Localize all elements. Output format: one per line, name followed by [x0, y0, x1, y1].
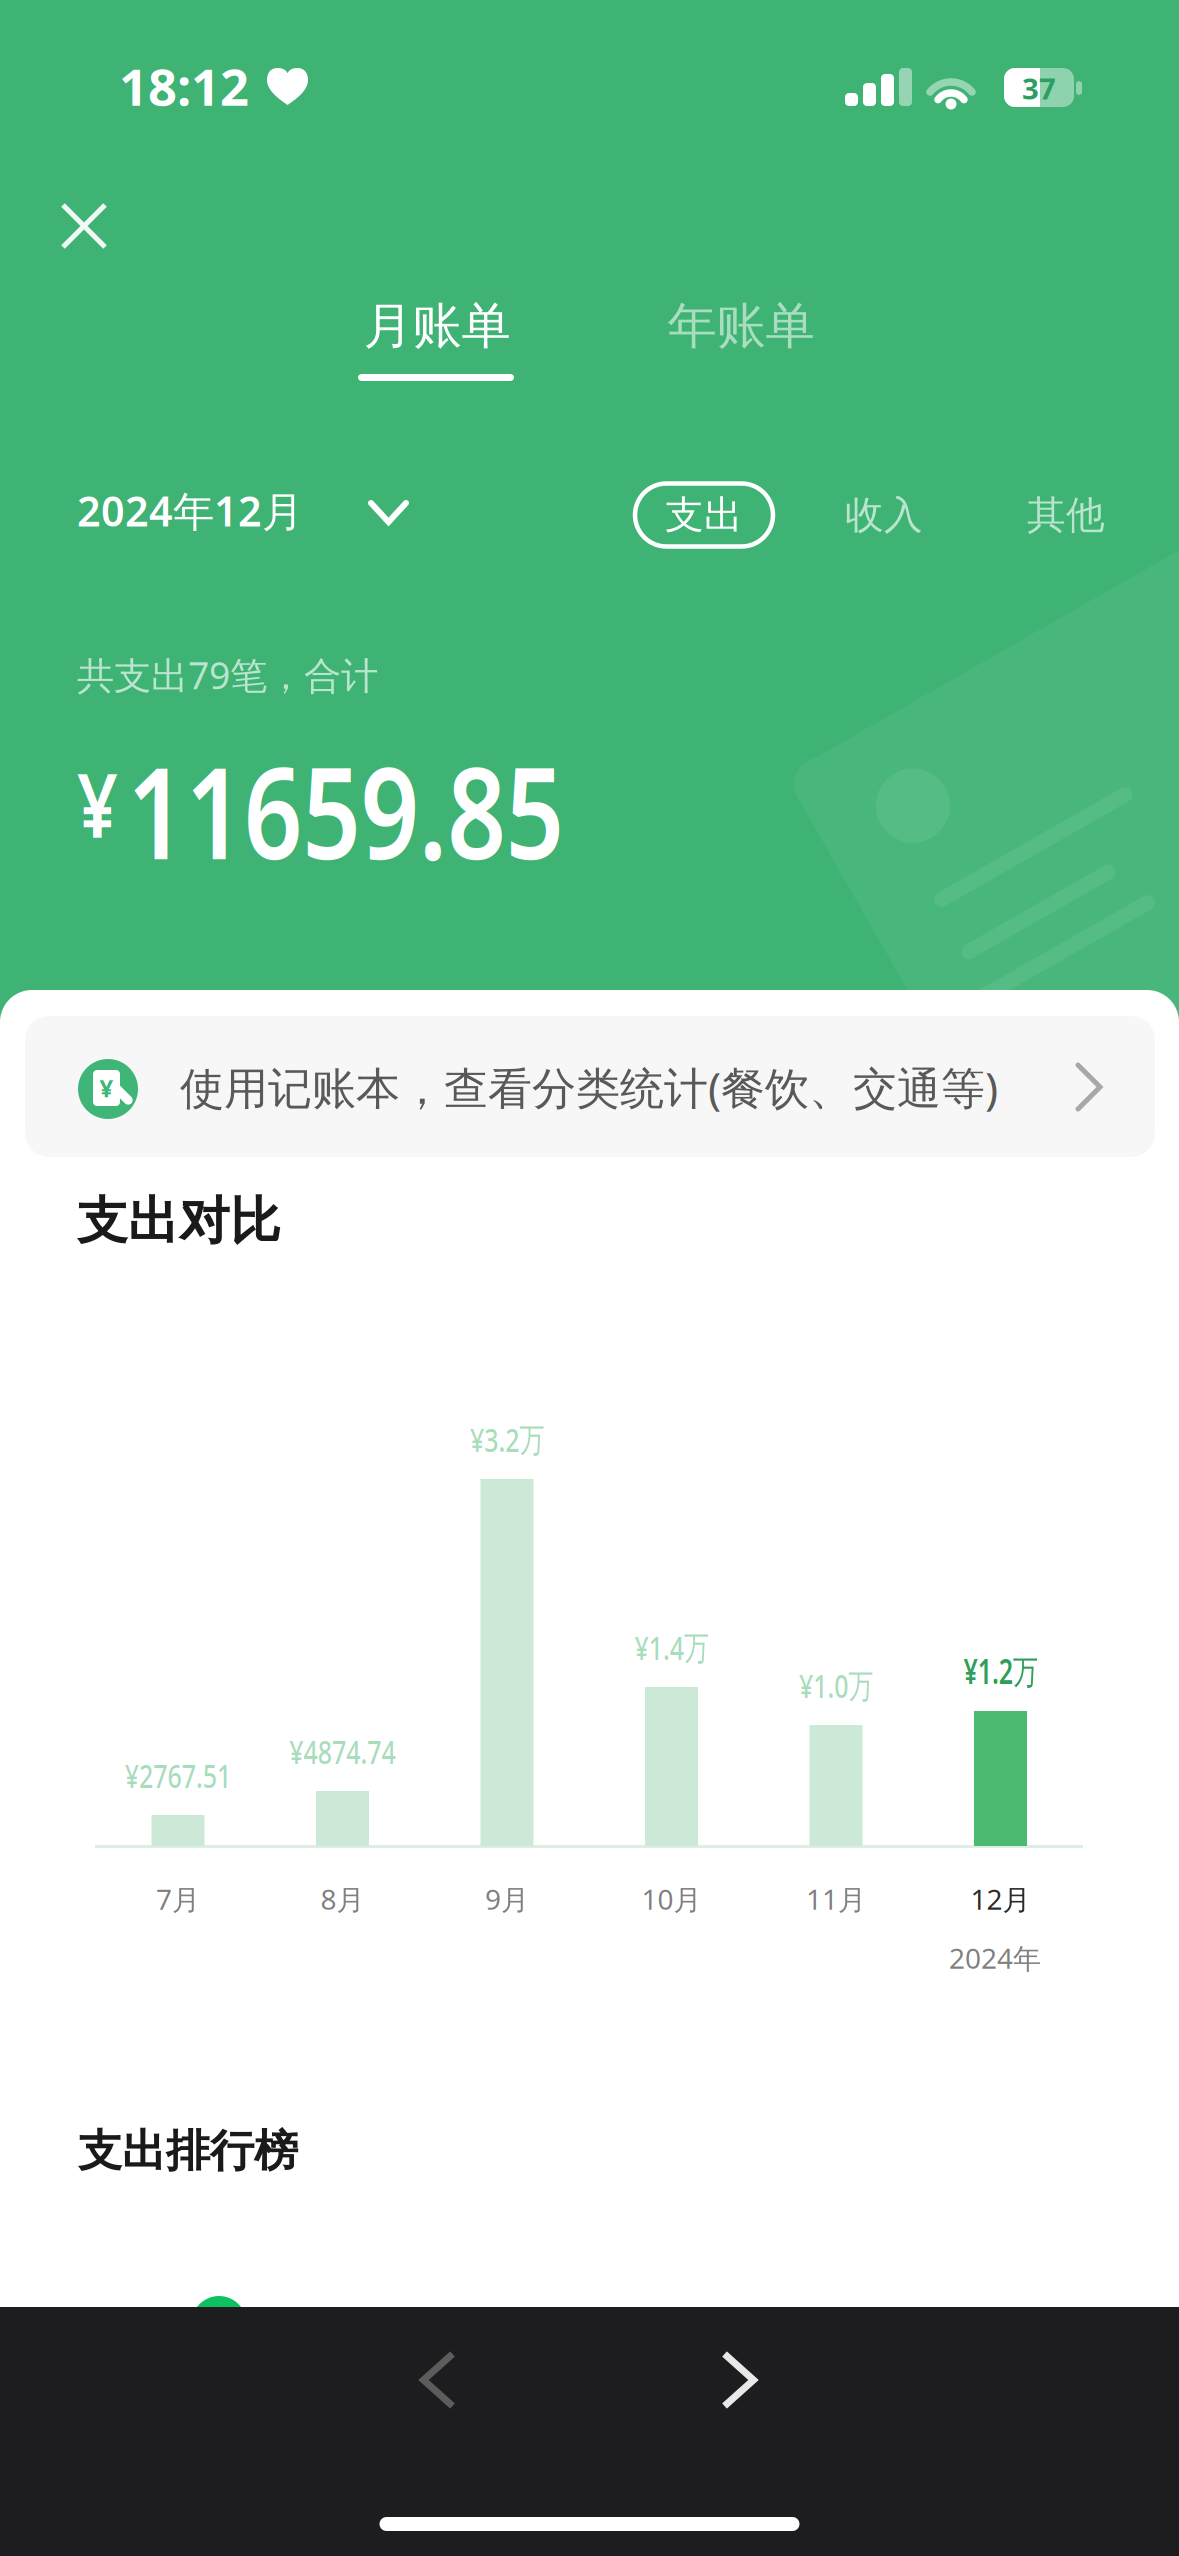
button[interactable]: 2024年12月 [77, 483, 417, 539]
staticText: 11659.85 [139, 726, 678, 894]
staticText: 共支出79笔，合计 [77, 650, 378, 700]
staticText: 2024年12月 [77, 483, 303, 538]
button[interactable]: 月账单 [287, 281, 587, 371]
staticText: 10月 [641, 1880, 701, 1918]
staticText: 2024年 [949, 1939, 1041, 1977]
button[interactable]: ¥ [25, 1016, 1155, 1157]
staticText: ¥3.2万 [457, 1417, 556, 1461]
staticText: 其他 [1027, 491, 1105, 539]
staticText: 支出 [665, 491, 743, 539]
staticText: 支出排行榜 [78, 2124, 298, 2178]
button[interactable]: Back [393, 2324, 482, 2436]
staticText: 18:12 [119, 52, 249, 120]
staticText: ¥ [77, 745, 127, 862]
button[interactable]: 其他 [991, 470, 1141, 560]
staticText: 支出对比 [77, 1190, 281, 1252]
staticText: ¥1.0万 [786, 1663, 885, 1707]
staticText: 12月 [970, 1880, 1030, 1918]
staticText: 8月 [320, 1880, 364, 1918]
staticText: 收入 [845, 491, 923, 539]
staticText: 11月 [806, 1880, 866, 1918]
button[interactable]: 收入 [809, 470, 959, 560]
staticText: 37 [1022, 68, 1056, 107]
staticText: ¥1.4万 [622, 1625, 721, 1669]
button[interactable]: 支出 [635, 483, 773, 546]
staticText: 7月 [156, 1880, 200, 1918]
button[interactable]: 年账单 [591, 281, 891, 371]
button[interactable]: Close [42, 184, 126, 268]
staticText: ¥ [99, 1072, 113, 1104]
staticText: 年账单 [667, 296, 814, 356]
staticText: 月账单 [363, 296, 510, 356]
staticText: ¥4874.74 [271, 1729, 413, 1773]
staticText: 9月 [485, 1880, 529, 1918]
staticText: 使用记账本，查看分类统计(餐饮、交通等) [180, 1058, 998, 1116]
staticText: ¥2767.51 [107, 1753, 249, 1797]
button[interactable]: Forward [694, 2324, 783, 2436]
staticText: ¥1.2万 [951, 1649, 1050, 1693]
